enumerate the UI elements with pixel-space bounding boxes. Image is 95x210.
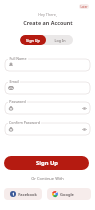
button[interactable]: Log In xyxy=(46,35,73,45)
button[interactable]: Sign Up xyxy=(20,35,46,45)
button[interactable]: Sign Up xyxy=(4,156,89,170)
staticText: Facebook xyxy=(18,192,37,197)
other: Show password xyxy=(82,127,87,132)
button[interactable]: Show password xyxy=(5,102,90,114)
button[interactable]: Show password xyxy=(5,123,90,135)
button[interactable]: Google xyxy=(47,188,91,200)
staticText: Hey There, xyxy=(38,12,57,17)
staticText: Full Name xyxy=(9,56,27,61)
staticText: Log In xyxy=(54,38,66,43)
button[interactable] xyxy=(5,82,90,94)
staticText: Sign Up xyxy=(26,38,40,43)
staticText: Or Continue With xyxy=(31,176,64,181)
staticText: Google xyxy=(60,192,74,197)
button[interactable]: Facebook xyxy=(4,188,42,200)
staticText: Email xyxy=(9,79,19,84)
staticText: Create an Account xyxy=(23,19,73,26)
button[interactable] xyxy=(5,59,90,71)
staticText: Confirm Password xyxy=(9,120,40,125)
staticText: Sign Up xyxy=(36,159,58,167)
staticText: Later xyxy=(80,5,88,9)
other: Show password xyxy=(82,106,87,111)
button[interactable]: Later xyxy=(79,4,89,9)
staticText: Password xyxy=(9,99,26,104)
